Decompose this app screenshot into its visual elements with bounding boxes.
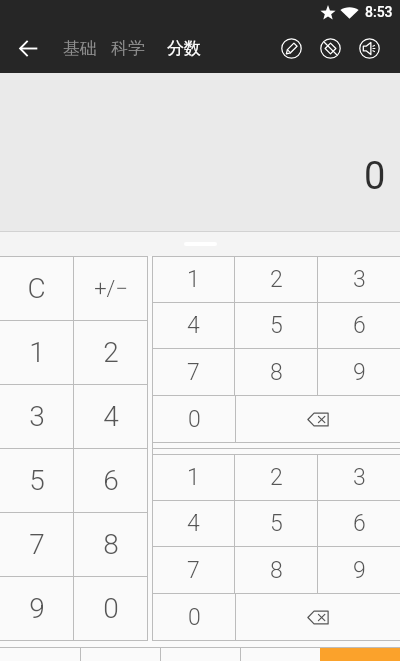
staticText: 0	[364, 154, 386, 199]
button[interactable]: Key 3	[160, 648, 240, 661]
staticText: 5	[270, 510, 283, 537]
staticText: 8	[103, 528, 119, 561]
button[interactable]: 0	[74, 577, 147, 640]
staticText: 0	[188, 604, 201, 631]
staticText: 7	[187, 359, 200, 386]
button[interactable]: 1	[0, 321, 73, 384]
staticText: 科学	[111, 38, 145, 59]
button[interactable]: 1	[153, 455, 234, 500]
button[interactable]: 5	[0, 449, 73, 512]
button[interactable]: 2	[235, 257, 317, 302]
staticText: 9	[353, 557, 366, 584]
staticText: 6	[353, 312, 366, 339]
button[interactable]: 6	[74, 449, 147, 512]
button[interactable]: Erase	[319, 37, 342, 60]
button[interactable]: 8	[235, 349, 317, 395]
button[interactable]: 8	[235, 547, 317, 593]
button[interactable]: 3	[0, 385, 73, 448]
button[interactable]: 9	[318, 547, 400, 593]
button[interactable]: 3	[318, 257, 400, 302]
staticText: 9	[353, 359, 366, 386]
staticText: 分数	[167, 38, 201, 59]
button[interactable]: +/−	[74, 257, 147, 320]
button[interactable]: Backspace	[236, 396, 400, 442]
staticText: 3	[353, 464, 366, 491]
button[interactable]: 4	[74, 385, 147, 448]
button[interactable]: 分数	[167, 38, 201, 59]
staticText: 2	[270, 266, 283, 293]
staticText: 8	[270, 359, 283, 386]
staticText: 7	[187, 557, 200, 584]
staticText: 2	[270, 464, 283, 491]
staticText: 8	[270, 557, 283, 584]
staticText: 4	[103, 400, 119, 433]
staticText: 3	[353, 266, 366, 293]
staticText: 2	[103, 336, 119, 369]
staticText: 0	[188, 406, 201, 433]
staticText: 3	[29, 400, 45, 433]
staticText: 9	[29, 592, 45, 625]
staticText: 5	[270, 312, 283, 339]
button[interactable]: C	[0, 257, 73, 320]
staticText: 6	[103, 464, 119, 497]
button[interactable]: 基础	[63, 38, 97, 59]
button[interactable]: 9	[318, 349, 400, 395]
button[interactable]: 5	[235, 303, 317, 348]
button[interactable]: 7	[0, 513, 73, 576]
staticText: 8:53	[365, 4, 393, 20]
staticText: 1	[29, 336, 45, 369]
button[interactable]: 3	[318, 455, 400, 500]
staticText: 6	[353, 510, 366, 537]
button[interactable]: 4	[153, 501, 234, 546]
button[interactable]: 4	[153, 303, 234, 348]
button[interactable]: 2	[235, 455, 317, 500]
button[interactable]: 0	[153, 594, 235, 640]
staticText: 7	[29, 528, 45, 561]
staticText: 5	[29, 464, 45, 497]
button[interactable]: Backspace	[236, 594, 400, 640]
button[interactable]: 6	[318, 303, 400, 348]
staticText: 4	[187, 510, 200, 537]
button[interactable]: Key 4	[240, 648, 320, 661]
button[interactable]: 科学	[111, 38, 145, 59]
staticText: 1	[187, 266, 200, 293]
staticText: 0	[103, 592, 119, 625]
button[interactable]: Back	[12, 32, 45, 65]
button[interactable]: 5	[235, 501, 317, 546]
staticText: 1	[187, 464, 200, 491]
button[interactable]: 0	[153, 396, 235, 442]
staticText: C	[27, 272, 46, 305]
button[interactable]: 7	[153, 349, 234, 395]
button[interactable]: Edit	[280, 37, 303, 60]
button[interactable]: Key 2	[80, 648, 160, 661]
staticText: 基础	[63, 38, 97, 59]
button[interactable]: 6	[318, 501, 400, 546]
button[interactable]: Sound	[358, 37, 381, 60]
staticText: 4	[187, 312, 200, 339]
button[interactable]: 8	[74, 513, 147, 576]
button[interactable]: 9	[0, 577, 73, 640]
button[interactable]: 2	[74, 321, 147, 384]
staticText: +/−	[94, 276, 128, 302]
button[interactable]: 1	[153, 257, 234, 302]
button[interactable]: 7	[153, 547, 234, 593]
